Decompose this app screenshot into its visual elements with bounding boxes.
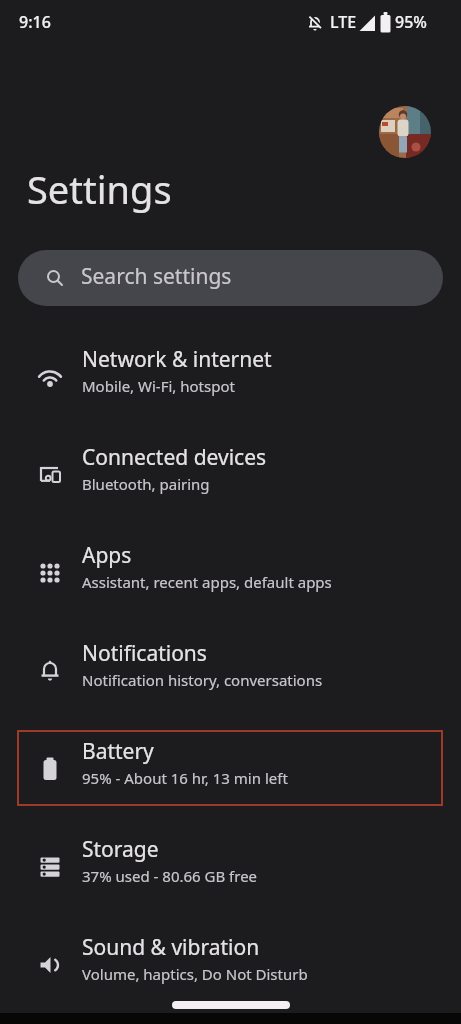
staticText: LTE [330,11,357,33]
staticText: 9:16 [19,11,51,33]
button[interactable]: Network & internet [0,327,461,425]
button[interactable]: Sound & vibration [0,915,461,1013]
staticText: Settings [27,163,172,215]
staticText: Apps [82,541,132,570]
staticText: Notifications [82,639,207,668]
staticText: Assistant, recent apps, default apps [82,572,332,592]
staticText: 37% used - 80.66 GB free [82,866,258,886]
staticText: Sound & vibration [82,933,260,962]
staticText: Search settings [81,262,232,291]
staticText: Network & internet [82,345,272,374]
staticText: 95% [395,11,427,33]
button[interactable] [379,106,431,158]
staticText: Battery [82,737,154,766]
button[interactable]: Apps [0,523,461,621]
button[interactable]: Notifications [0,621,461,719]
staticText: Volume, haptics, Do Not Disturb [82,964,308,984]
button[interactable]: Search settings [18,250,443,306]
staticText: Storage [82,835,159,864]
button[interactable]: Storage [0,817,461,915]
button[interactable]: Battery [0,719,461,817]
button[interactable]: Connected devices [0,425,461,523]
staticText: 95% - About 16 hr, 13 min left [82,768,288,788]
staticText: Notification history, conversations [82,670,323,690]
staticText: Mobile, Wi-Fi, hotspot [82,376,235,396]
staticText: Bluetooth, pairing [82,474,210,494]
staticText: Connected devices [82,443,267,472]
